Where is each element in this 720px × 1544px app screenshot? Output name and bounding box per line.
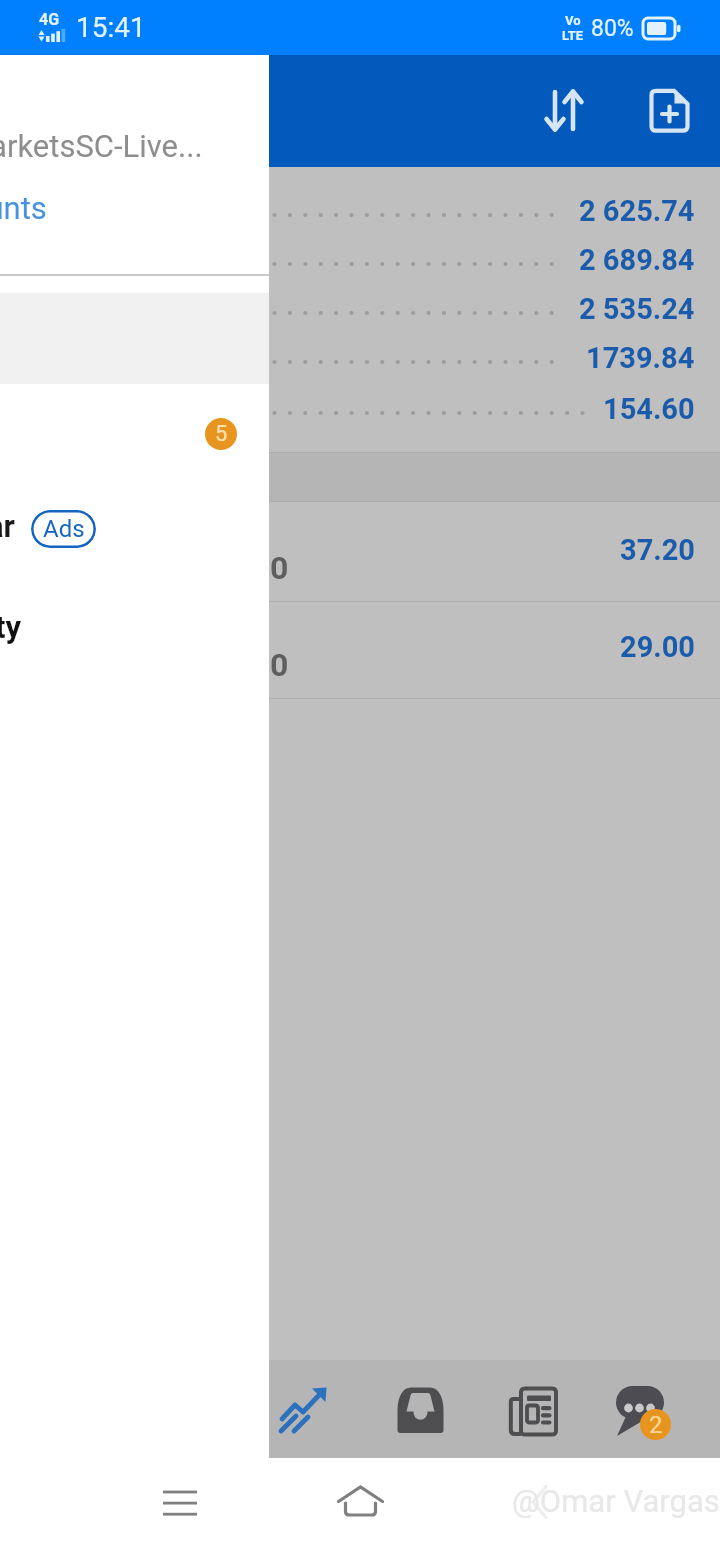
- button[interactable]: 37.20: [0, 502, 720, 601]
- button[interactable]: Sort symbols: [524, 71, 604, 151]
- button[interactable]: Quotes: [248, 1360, 360, 1458]
- button[interactable]: Ads: [31, 510, 96, 548]
- button[interactable]: 2 689.84: [0, 236, 720, 284]
- button[interactable]: 2 625.74: [0, 187, 720, 235]
- button[interactable]: 154.60: [0, 385, 720, 433]
- staticText: Vo: [565, 13, 581, 28]
- staticText: 80%: [591, 15, 634, 42]
- staticText: Manage accounts: [0, 190, 47, 226]
- staticText: 4G: [39, 10, 60, 29]
- staticText: 2 689.84: [579, 243, 695, 277]
- button[interactable]: 1739.84: [0, 334, 720, 382]
- button[interactable]: News: [477, 1360, 589, 1458]
- button[interactable]: Trade: [364, 1360, 476, 1458]
- staticText: 1739.84: [586, 341, 695, 375]
- staticText: Ads: [43, 515, 85, 543]
- staticText: 15:41: [76, 11, 146, 44]
- staticText: MarketsSC-Live...: [0, 128, 203, 164]
- button[interactable]: 29.00: [0, 602, 720, 698]
- button[interactable]: Home: [320, 1461, 400, 1541]
- staticText: 2: [649, 1411, 663, 1439]
- staticText: ty: [0, 609, 22, 645]
- staticText: 0: [270, 646, 289, 684]
- staticText: ar: [0, 508, 15, 544]
- staticText: 37.20: [620, 533, 695, 567]
- button[interactable]: Messages: [589, 1360, 701, 1458]
- staticText: 5: [215, 421, 228, 447]
- staticText: LTE: [562, 28, 584, 43]
- button[interactable]: 2 535.24: [0, 285, 720, 333]
- button[interactable]: Recent apps: [140, 1462, 220, 1542]
- staticText: 2 625.74: [579, 194, 695, 228]
- staticText: 154.60: [603, 392, 695, 426]
- staticText: 2 535.24: [579, 292, 695, 326]
- staticText: 29.00: [620, 630, 695, 664]
- staticText: 0: [270, 549, 289, 587]
- button[interactable]: Add symbol: [629, 71, 709, 151]
- button[interactable]: Manage accounts: [0, 180, 269, 236]
- button[interactable]: Back: [500, 1462, 580, 1542]
- staticText: @Omar Vargas: [512, 1483, 720, 1519]
